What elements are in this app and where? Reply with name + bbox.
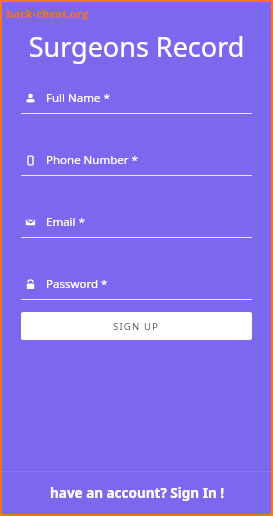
button[interactable]: Full name — [21, 90, 252, 114]
staticText: Password * — [46, 276, 108, 292]
staticText: Full Name * — [46, 90, 110, 106]
staticText: Surgeons Record — [2, 28, 271, 65]
other: Password — [21, 277, 39, 291]
button[interactable]: Phone number — [21, 152, 252, 176]
other: Email — [21, 215, 39, 229]
button[interactable]: Password — [21, 276, 252, 300]
staticText: Phone Number * — [46, 152, 138, 168]
staticText: hack-cheat.org — [6, 6, 89, 21]
other: Full name — [21, 91, 39, 105]
button[interactable]: have an account? Sign In ! — [2, 472, 271, 514]
staticText: have an account? Sign In ! — [50, 484, 224, 502]
other: Phone number — [21, 153, 39, 167]
staticText: Email * — [46, 214, 85, 230]
staticText: SIGN UP — [113, 320, 160, 333]
button[interactable]: SIGN UP — [21, 312, 252, 340]
button[interactable]: Email — [21, 214, 252, 238]
